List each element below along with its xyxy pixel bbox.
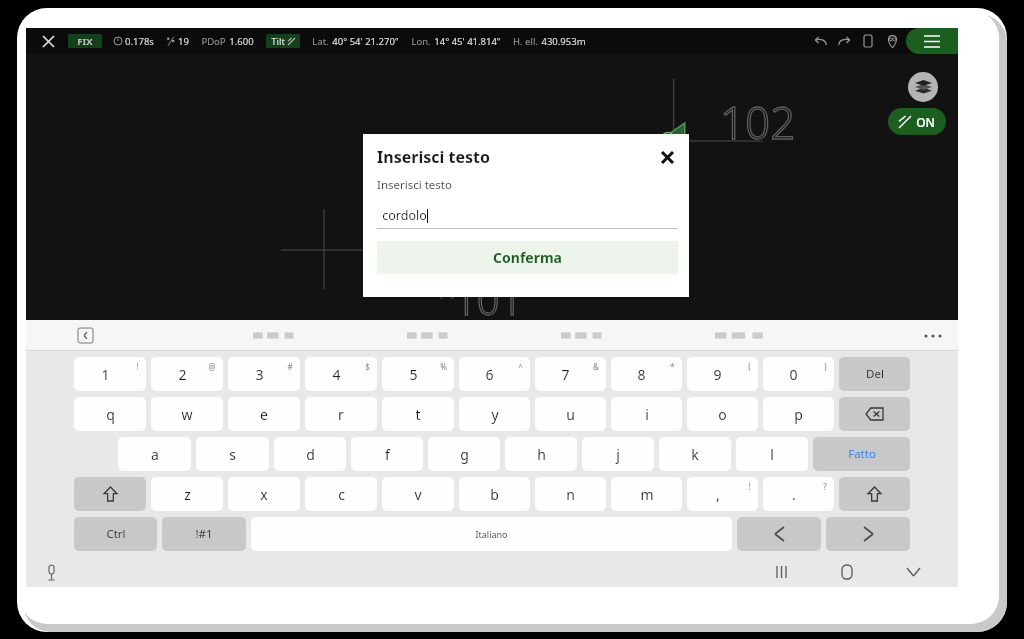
button[interactable]: Freccia sinistra: [737, 517, 821, 551]
staticText: %: [440, 361, 447, 372]
staticText: j: [616, 445, 620, 464]
button[interactable]: a: [118, 437, 191, 471]
button[interactable]: Location tag: [880, 29, 904, 53]
button[interactable]: y: [459, 397, 530, 431]
staticText: Tilt: [271, 35, 285, 48]
staticText: 1: [101, 365, 110, 384]
button[interactable]: 0: [763, 357, 834, 391]
button[interactable]: Undo: [808, 29, 832, 53]
button[interactable]: ON: [899, 108, 935, 135]
button[interactable]: FIX: [77, 34, 93, 48]
button[interactable]: Chiudi: [656, 146, 678, 168]
button[interactable]: 7: [535, 357, 606, 391]
button[interactable]: x: [228, 477, 300, 511]
staticText: Italiano: [475, 528, 508, 540]
button[interactable]: t: [382, 397, 454, 431]
button[interactable]: 5: [382, 357, 454, 391]
staticText: H. ell.: [513, 35, 538, 48]
staticText: r: [338, 405, 344, 424]
button[interactable]: h: [505, 437, 577, 471]
button[interactable]: Device: [856, 29, 880, 53]
button[interactable]: d: [274, 437, 346, 471]
staticText: 7: [561, 365, 570, 384]
staticText: #: [287, 361, 293, 372]
button[interactable]: Recenti: [768, 559, 794, 585]
button[interactable]: p: [763, 397, 834, 431]
staticText: 19: [178, 35, 189, 48]
button[interactable]: e: [228, 397, 300, 431]
button[interactable]: Nascondi tastiera: [900, 559, 926, 585]
button[interactable]: 9: [687, 357, 758, 391]
staticText: Del: [866, 366, 884, 382]
button[interactable]: v: [382, 477, 454, 511]
button[interactable]: !#1: [162, 517, 246, 551]
button[interactable]: k: [659, 437, 731, 471]
staticText: @: [208, 361, 216, 372]
button[interactable]: c: [305, 477, 377, 511]
button[interactable]: Shift: [74, 477, 146, 511]
button[interactable]: Espandi: [78, 328, 93, 343]
button[interactable]: Suggerimento: [407, 331, 451, 340]
staticText: x: [260, 485, 268, 504]
staticText: n: [566, 485, 575, 504]
button[interactable]: Italiano: [251, 517, 732, 551]
staticText: d: [306, 445, 315, 464]
button[interactable]: Suggerimento: [253, 331, 297, 340]
button[interactable]: 3: [228, 357, 300, 391]
button[interactable]: Layers: [908, 72, 938, 102]
button[interactable]: Altre opzioni: [923, 326, 943, 346]
button[interactable]: Suggerimento: [561, 331, 605, 340]
staticText: q: [106, 405, 115, 424]
button[interactable]: f: [351, 437, 423, 471]
staticText: Conferma: [493, 248, 562, 267]
button[interactable]: w: [151, 397, 223, 431]
staticText: z: [184, 485, 191, 504]
button[interactable]: i: [611, 397, 682, 431]
button[interactable]: Freccia destra: [826, 517, 910, 551]
button[interactable]: Tilt: [271, 34, 295, 48]
button[interactable]: Fatto: [813, 437, 910, 471]
button[interactable]: 1: [74, 357, 146, 391]
staticText: 0: [789, 365, 798, 384]
button[interactable]: Del: [839, 357, 910, 391]
button[interactable]: r: [305, 397, 377, 431]
staticText: ,: [716, 485, 720, 504]
button[interactable]: Redo: [832, 29, 856, 53]
button[interactable]: u: [535, 397, 606, 431]
button[interactable]: .: [763, 477, 834, 511]
button[interactable]: l: [736, 437, 808, 471]
staticText: !: [748, 481, 751, 492]
button[interactable]: j: [582, 437, 654, 471]
button[interactable]: 8: [611, 357, 682, 391]
staticText: ON: [916, 114, 935, 130]
button[interactable]: 4: [305, 357, 377, 391]
button[interactable]: Menu: [906, 28, 958, 54]
button[interactable]: Home: [834, 559, 860, 585]
button[interactable]: z: [151, 477, 223, 511]
button[interactable]: 2: [151, 357, 223, 391]
button[interactable]: g: [428, 437, 500, 471]
button[interactable]: o: [687, 397, 758, 431]
staticText: t: [415, 405, 421, 424]
button[interactable]: s: [196, 437, 269, 471]
button[interactable]: Conferma: [377, 241, 678, 274]
button[interactable]: 6: [459, 357, 530, 391]
staticText: p: [794, 405, 803, 424]
button[interactable]: Shift: [839, 477, 910, 511]
button[interactable]: n: [535, 477, 606, 511]
staticText: Ctrl: [106, 526, 126, 542]
staticText: Inserisci testo: [377, 146, 490, 168]
button[interactable]: ,: [687, 477, 758, 511]
button[interactable]: Ctrl: [74, 517, 157, 551]
button[interactable]: Microfono: [38, 559, 64, 585]
button[interactable]: Close: [36, 29, 60, 53]
button[interactable]: m: [611, 477, 682, 511]
button[interactable]: Backspace: [839, 397, 910, 431]
staticText: &: [593, 361, 599, 372]
button[interactable]: b: [459, 477, 530, 511]
staticText: 9: [713, 365, 722, 384]
staticText: s: [229, 445, 236, 464]
staticText: (: [748, 361, 751, 372]
button[interactable]: q: [74, 397, 146, 431]
button[interactable]: Suggerimento: [715, 331, 767, 340]
